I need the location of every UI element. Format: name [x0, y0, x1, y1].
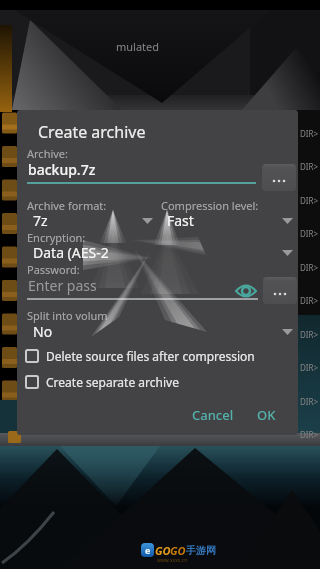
- button[interactable]: [27, 208, 155, 234]
- staticText: DIR>: [300, 329, 319, 340]
- staticText: GO: [155, 543, 171, 558]
- staticText: 7z: [33, 211, 48, 230]
- button[interactable]: [235, 282, 257, 300]
- button[interactable]: [282, 329, 294, 336]
- staticText: DIR>: [300, 429, 319, 440]
- button[interactable]: [27, 156, 257, 186]
- button[interactable]: Create separate archive: [25, 374, 179, 390]
- staticText: Split into volum: [27, 308, 108, 323]
- button[interactable]: [282, 250, 294, 257]
- staticText: Create separate archive: [46, 374, 179, 390]
- staticText: DIR>: [300, 228, 319, 239]
- staticText: backup.7z: [28, 160, 96, 179]
- button[interactable]: [27, 240, 288, 266]
- staticText: Create archive: [38, 121, 146, 143]
- button[interactable]: [263, 277, 297, 304]
- staticText: Password:: [27, 262, 80, 277]
- button[interactable]: [282, 218, 294, 225]
- staticText: No: [33, 322, 53, 341]
- staticText: GO: [170, 543, 186, 558]
- button[interactable]: [142, 218, 154, 225]
- staticText: DIR>: [300, 295, 319, 306]
- staticText: Fast: [167, 211, 194, 230]
- button[interactable]: Cancel: [185, 401, 241, 429]
- staticText: Enter pass: [28, 276, 97, 295]
- staticText: Cancel: [192, 406, 234, 424]
- button[interactable]: OK: [246, 401, 286, 429]
- staticText: www.xxxx.cn: [157, 557, 188, 564]
- staticText: Encryption:: [27, 230, 86, 245]
- staticText: Compression level:: [161, 198, 259, 213]
- button[interactable]: [27, 272, 259, 302]
- button[interactable]: [27, 319, 288, 345]
- staticText: DIR>: [300, 128, 319, 139]
- staticText: 手游网: [186, 544, 216, 557]
- staticText: Delete source files after compression: [46, 348, 255, 364]
- staticText: Archive:: [27, 146, 69, 161]
- staticText: DIR>: [300, 161, 319, 172]
- staticText: DIR>: [300, 362, 319, 373]
- staticText: e: [145, 544, 151, 556]
- staticText: DIR>: [300, 195, 319, 206]
- staticText: Data (AES-2: [33, 243, 109, 262]
- staticText: DIR>: [300, 262, 319, 273]
- staticText: Archive format:: [27, 198, 107, 213]
- staticText: mulated: [116, 39, 160, 54]
- button[interactable]: [161, 208, 288, 234]
- staticText: DIR>: [300, 396, 319, 407]
- button[interactable]: [262, 164, 296, 191]
- staticText: OK: [257, 406, 276, 424]
- button[interactable]: Delete source files after compression: [25, 348, 255, 364]
